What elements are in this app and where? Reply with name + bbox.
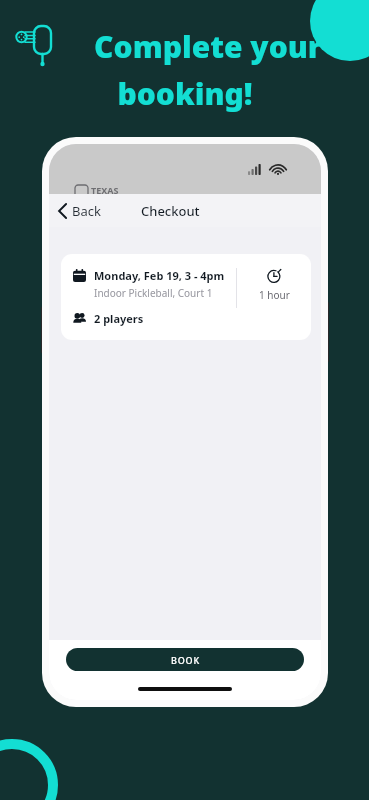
staticText: booking!	[117, 73, 253, 114]
button[interactable]: Monday, Feb 19, 3 - 4pm	[61, 254, 311, 340]
staticText: Checkout	[141, 202, 200, 220]
staticText: Indoor Pickleball, Court 1	[94, 286, 213, 300]
staticText: 2 players	[94, 311, 144, 326]
staticText: Monday, Feb 19, 3 - 4pm	[94, 268, 225, 283]
staticText: Back	[72, 202, 101, 220]
button[interactable]: Back	[49, 194, 109, 227]
staticText: Complete your	[94, 26, 322, 67]
button[interactable]: BOOK	[66, 648, 304, 671]
staticText: 1 hour	[259, 288, 290, 302]
staticText: BOOK	[171, 654, 200, 666]
staticText: TEXAS	[91, 184, 119, 196]
